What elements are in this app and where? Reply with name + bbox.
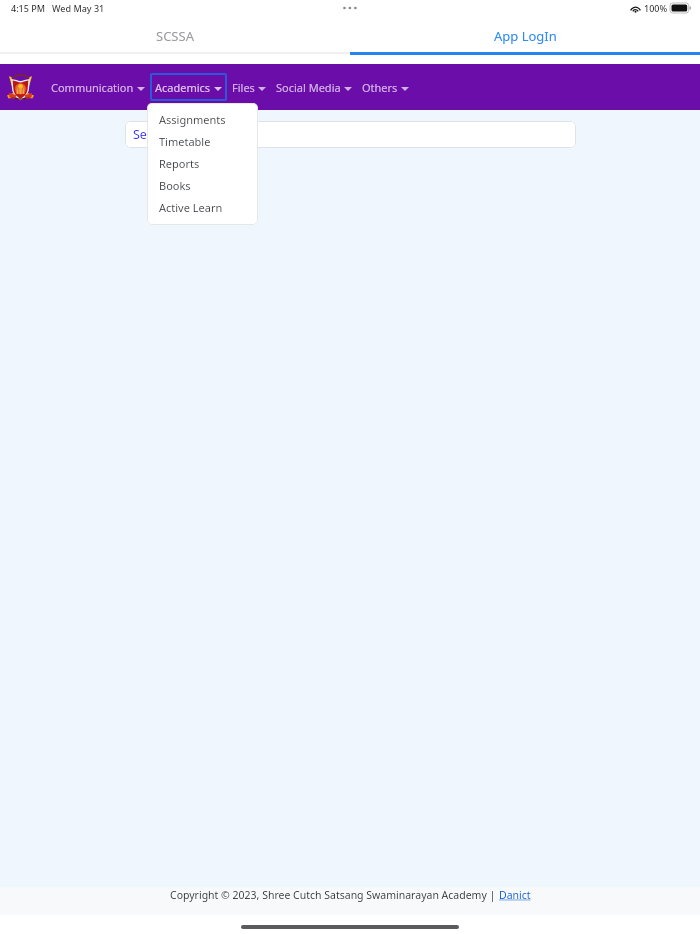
staticText: Academics (155, 80, 211, 95)
button[interactable]: Assignments (147, 108, 258, 130)
staticText: Others (362, 80, 398, 95)
staticText: App LogIn (494, 27, 557, 45)
staticText: Social Media (276, 80, 341, 95)
button[interactable]: Active Learn (147, 196, 258, 218)
button[interactable]: SCSSA home (7, 74, 34, 101)
staticText: Books (159, 178, 191, 193)
staticText: Wed May 31 (52, 2, 105, 14)
button[interactable]: Timetable (147, 130, 258, 152)
button[interactable]: Files (227, 73, 271, 101)
button[interactable]: Books (147, 174, 258, 196)
other: Battery 100 percent (670, 3, 691, 13)
button[interactable]: Communication (46, 73, 150, 101)
button[interactable]: Social Media (271, 73, 357, 101)
staticText: Files (232, 80, 255, 95)
button[interactable]: Others (357, 73, 414, 101)
staticText: Assignments (159, 112, 226, 127)
staticText: Select Student (133, 126, 218, 143)
other: Wi-Fi (630, 4, 641, 13)
staticText: Reports (159, 156, 200, 171)
other: Home indicator (241, 925, 459, 929)
staticText: Active Learn (159, 200, 223, 215)
staticText: SCSSA (156, 27, 194, 45)
staticText: Copyright © 2023, Shree Cutch Satsang Sw… (170, 888, 499, 902)
button[interactable]: App LogIn (350, 21, 700, 51)
button[interactable]: Academics (150, 73, 227, 101)
button[interactable]: Reports (147, 152, 258, 174)
staticText: 100% (644, 2, 668, 14)
button[interactable]: SCSSA (0, 21, 350, 51)
button[interactable]: Select Student (125, 121, 576, 148)
staticText: Timetable (159, 134, 211, 149)
staticText: Communication (51, 80, 134, 95)
staticText: 4:15 PM (11, 2, 45, 14)
button[interactable]: Danict (499, 888, 531, 902)
